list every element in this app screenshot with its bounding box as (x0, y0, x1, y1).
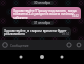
button[interactable]: Emoji (0, 40, 10, 50)
button[interactable]: 30 октября (31, 1, 54, 5)
staticText: Здравствуйте! Прошу подсказать, когда по… (13, 8, 79, 19)
button[interactable]: Recent apps (60, 50, 72, 62)
button[interactable]: Attach file (64, 40, 74, 50)
button[interactable]: Record voice message (74, 40, 84, 50)
button[interactable]: Back (12, 50, 24, 62)
button[interactable]: 31 октября (31, 21, 54, 25)
button[interactable]: Home (36, 50, 48, 62)
staticText: Сообщение (10, 43, 64, 47)
staticText: 30 октября (34, 1, 51, 5)
button[interactable]: Здравствуйте, в скором времени будет реа… (2, 27, 71, 37)
staticText: Здравствуйте, в скором времени будет реа… (4, 28, 69, 36)
staticText: 14:32 (72, 14, 79, 18)
staticText: 09:14 (62, 32, 69, 36)
staticText: 31 октября (34, 21, 51, 25)
button[interactable]: Здравствуйте! Прошу подсказать, когда по… (11, 7, 81, 19)
